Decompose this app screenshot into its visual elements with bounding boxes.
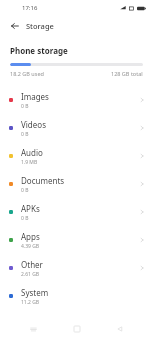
staticText: Audio [21,147,43,158]
button[interactable]: APKs [0,198,153,226]
staticText: 0 B [21,187,29,194]
staticText: 0 B [21,215,29,222]
button[interactable]: Videos [0,114,153,142]
staticText: 17:16 [22,4,38,12]
button[interactable]: Documents [0,170,153,198]
button[interactable]: Apps [0,226,153,254]
staticText: System [21,287,49,298]
staticText: 11.2 GB [21,299,40,306]
button[interactable]: Audio [0,142,153,170]
staticText: 1.9 MB [21,159,38,166]
button[interactable]: Back [110,319,130,339]
staticText: 2.61 GB [21,271,40,278]
button[interactable]: System [0,282,153,310]
button[interactable]: Home [67,319,87,339]
button[interactable]: Other [0,254,153,282]
staticText: Apps [21,231,40,242]
button[interactable]: Recents [23,319,43,339]
staticText: Documents [21,175,65,186]
staticText: Images [21,91,49,102]
staticText: Phone storage [10,45,68,56]
staticText: 4.39 GB [21,243,40,250]
staticText: 128 GB total [111,70,143,77]
staticText: Storage [26,21,54,31]
staticText: 18.2 GB used [10,70,44,77]
staticText: 0 B [21,103,29,110]
staticText: APKs [21,203,40,214]
button[interactable]: Images [0,86,153,114]
button[interactable]: Back [8,19,22,33]
staticText: Videos [21,119,46,130]
staticText: 0 B [21,131,29,138]
staticText: Other [21,259,43,270]
